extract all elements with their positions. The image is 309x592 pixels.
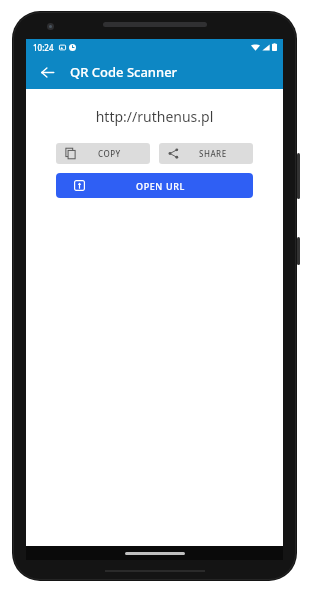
button[interactable]: OPEN URL xyxy=(56,173,253,198)
staticText: 10:24 xyxy=(33,42,54,53)
staticText: OPEN URL xyxy=(136,180,185,192)
staticText: SHARE xyxy=(199,148,227,159)
staticText: QR Code Scanner xyxy=(70,63,178,81)
staticText: COPY xyxy=(98,148,121,159)
staticText: http://ruthenus.pl xyxy=(26,107,283,126)
button[interactable]: COPY xyxy=(56,143,150,164)
button[interactable]: Back xyxy=(34,59,60,85)
button[interactable]: SHARE xyxy=(159,143,253,164)
